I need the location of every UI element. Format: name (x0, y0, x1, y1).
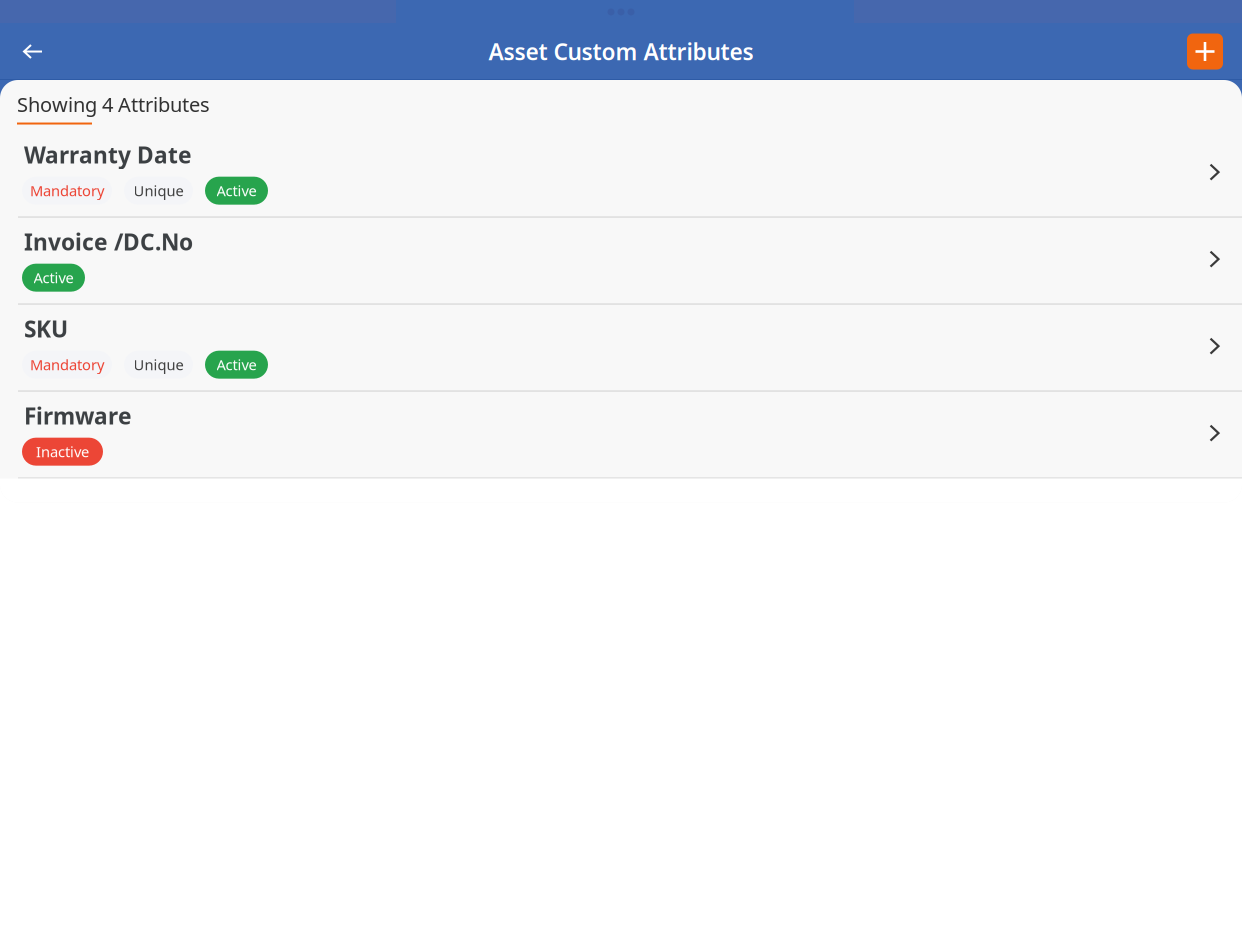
button[interactable]: Invoice /DC.No (0, 218, 1242, 292)
staticText: Firmware (24, 401, 132, 431)
staticText: SKU (24, 314, 68, 344)
button[interactable]: Back (0, 23, 61, 80)
button[interactable]: Warranty Date (0, 131, 1242, 205)
staticText: Active (216, 355, 256, 374)
staticText: Mandatory (30, 355, 104, 374)
button[interactable]: Showing 4 Attributes (0, 80, 210, 131)
staticText: Inactive (36, 442, 89, 461)
button[interactable]: Add attribute (1187, 33, 1223, 69)
staticText: Unique (133, 181, 183, 200)
staticText: Mandatory (30, 181, 104, 200)
staticText: Warranty Date (24, 140, 192, 170)
staticText: Unique (133, 355, 183, 374)
button[interactable]: Firmware (0, 392, 1242, 466)
staticText: Showing 4 Attributes (17, 91, 210, 118)
button[interactable]: SKU (0, 305, 1242, 379)
staticText: Active (33, 268, 73, 287)
staticText: Active (216, 181, 256, 200)
staticText: Invoice /DC.No (24, 227, 193, 257)
staticText: Asset Custom Attributes (488, 36, 753, 66)
